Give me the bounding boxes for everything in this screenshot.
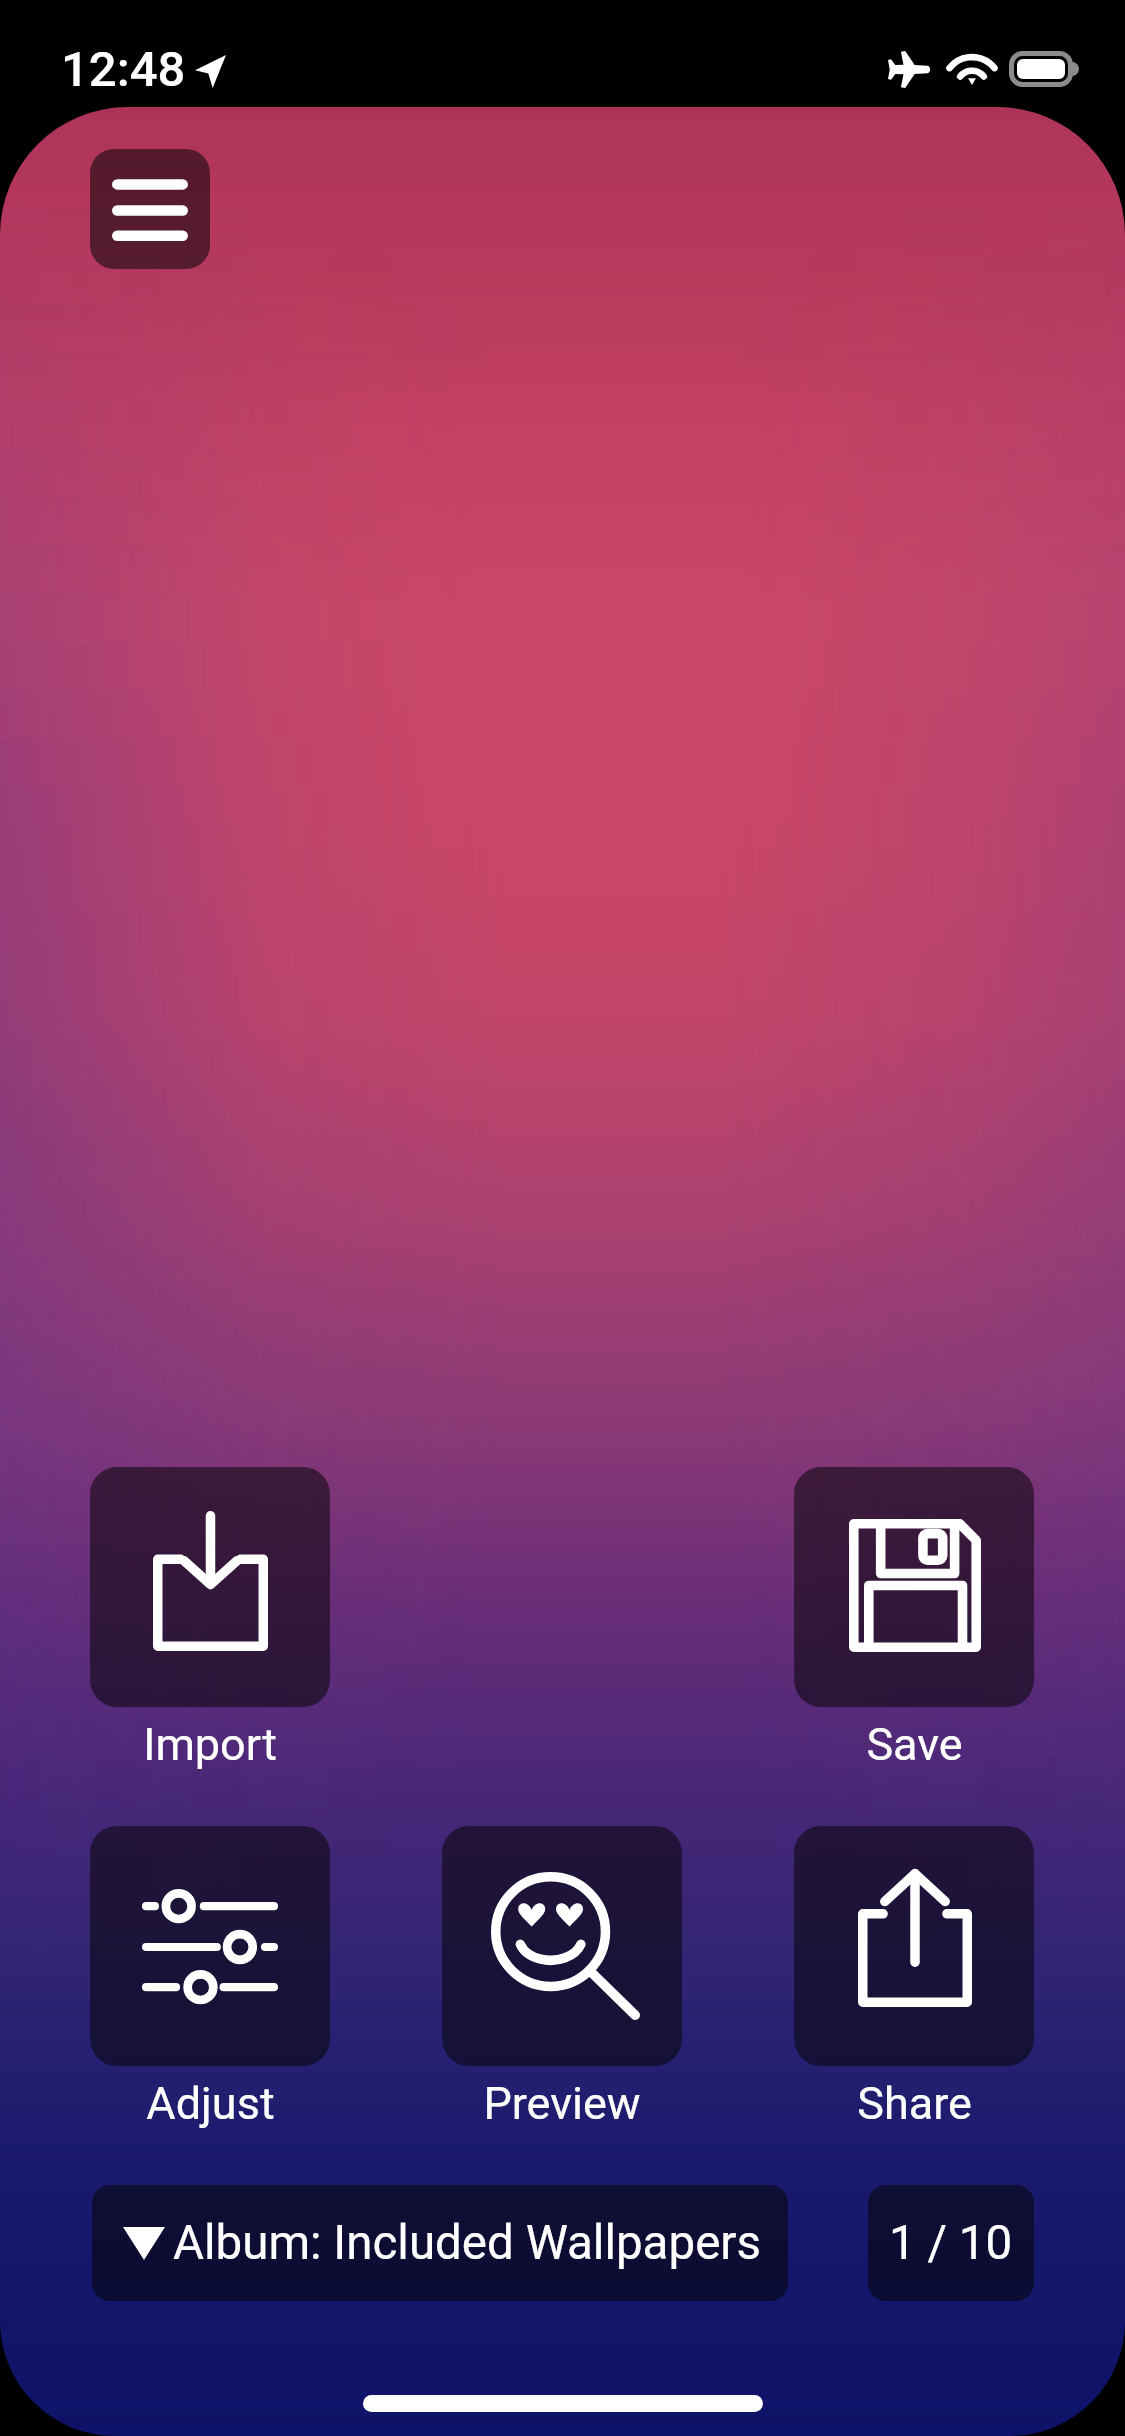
staticText: 12:48 [61, 41, 186, 98]
staticText: Preview [483, 2077, 641, 2130]
button[interactable]: Share [794, 1826, 1034, 2130]
button[interactable]: Album: Included Wallpapers [92, 2185, 788, 2301]
staticText: Import [143, 1718, 277, 1771]
button[interactable]: 1 / 10 [868, 2185, 1034, 2301]
staticText: Adjust [146, 2077, 275, 2130]
other: Import [90, 1467, 330, 1707]
other: Adjust [90, 1826, 330, 2066]
other: Preview [442, 1826, 682, 2066]
button[interactable]: Menu [90, 149, 210, 269]
staticText: Album: Included Wallpapers [173, 2215, 761, 2271]
other: Share [794, 1826, 1034, 2066]
staticText: Share [857, 2077, 972, 2130]
button[interactable]: Preview [442, 1826, 682, 2130]
button[interactable]: Save [794, 1467, 1034, 1771]
staticText: Save [866, 1718, 963, 1771]
staticText: 1 / 10 [889, 2215, 1013, 2271]
button[interactable]: Import [90, 1467, 330, 1771]
button[interactable]: Adjust [90, 1826, 330, 2130]
other: Save [794, 1467, 1034, 1707]
